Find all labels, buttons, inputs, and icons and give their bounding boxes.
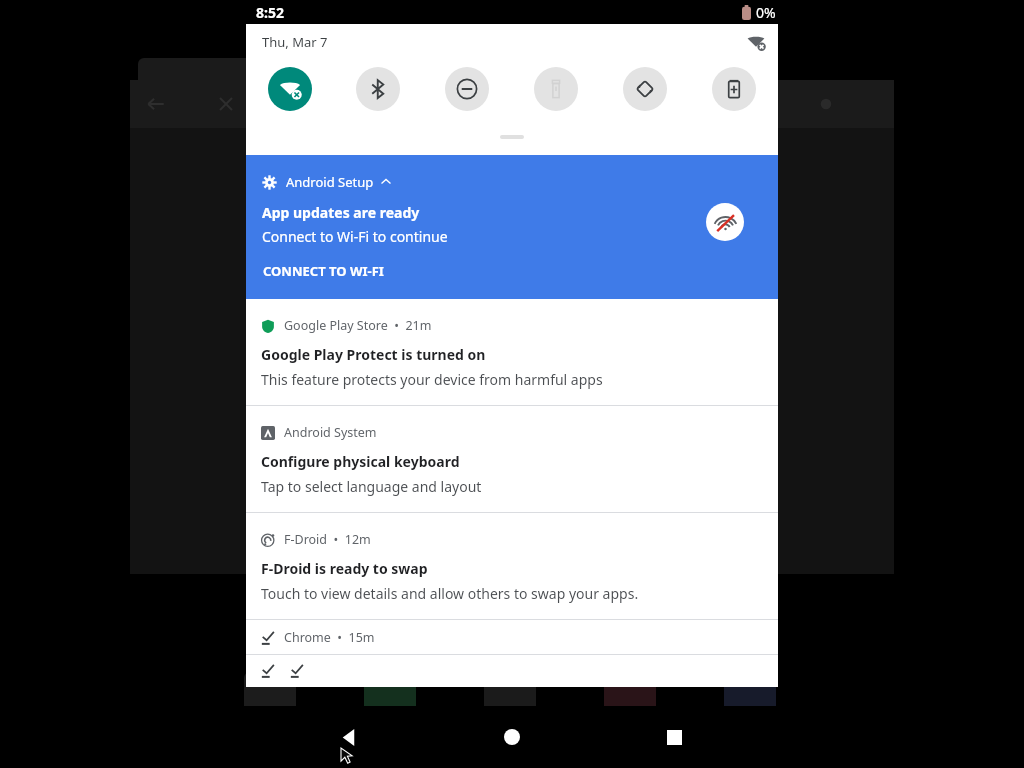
staticText: F-Droid • 12m bbox=[284, 531, 371, 548]
staticText: Connect to Wi-Fi to continue bbox=[262, 227, 448, 246]
staticText: 0% bbox=[756, 3, 776, 22]
staticText: Google Play Protect is turned on bbox=[261, 345, 486, 364]
button[interactable]: Android Setup bbox=[246, 155, 778, 299]
staticText: F-Droid is ready to swap bbox=[261, 559, 428, 578]
staticText: 8:52 bbox=[256, 3, 284, 22]
staticText: Google Play Store • 21m bbox=[284, 317, 432, 334]
button[interactable] bbox=[246, 655, 778, 687]
staticText: This feature protects your device from h… bbox=[261, 370, 603, 389]
button[interactable]: Recent apps bbox=[650, 713, 698, 761]
staticText: Android System bbox=[284, 424, 377, 441]
staticText: CONNECT TO WI-FI bbox=[263, 262, 384, 280]
button[interactable]: Chrome • 15m bbox=[246, 620, 778, 654]
button[interactable]: F-Droid • 12m bbox=[246, 513, 778, 619]
staticText: App updates are ready bbox=[262, 203, 420, 222]
button[interactable]: Wi-Fi bbox=[268, 67, 312, 111]
button[interactable]: Battery Saver bbox=[712, 67, 756, 111]
button[interactable]: Expand quick settings bbox=[500, 135, 524, 139]
button[interactable]: Google Play Store • 21m bbox=[246, 299, 778, 405]
staticText: Thu, Mar 7 bbox=[262, 33, 328, 51]
staticText: Chrome • 15m bbox=[284, 629, 375, 646]
button[interactable]: Do Not Disturb bbox=[445, 67, 489, 111]
staticText: Tap to select language and layout bbox=[261, 477, 482, 496]
button[interactable]: Flashlight bbox=[534, 67, 578, 111]
staticText: Android Setup bbox=[286, 173, 374, 191]
button[interactable]: Auto-rotate bbox=[623, 67, 667, 111]
staticText: Touch to view details and allow others t… bbox=[261, 584, 639, 603]
button[interactable]: Android System bbox=[246, 406, 778, 512]
other: Wi-Fi disconnected bbox=[746, 32, 766, 52]
button[interactable]: Back bbox=[325, 713, 373, 761]
button[interactable]: Home bbox=[488, 713, 536, 761]
button[interactable]: Bluetooth bbox=[356, 67, 400, 111]
button[interactable]: CONNECT TO WI-FI bbox=[262, 259, 385, 283]
staticText: Configure physical keyboard bbox=[261, 452, 460, 471]
